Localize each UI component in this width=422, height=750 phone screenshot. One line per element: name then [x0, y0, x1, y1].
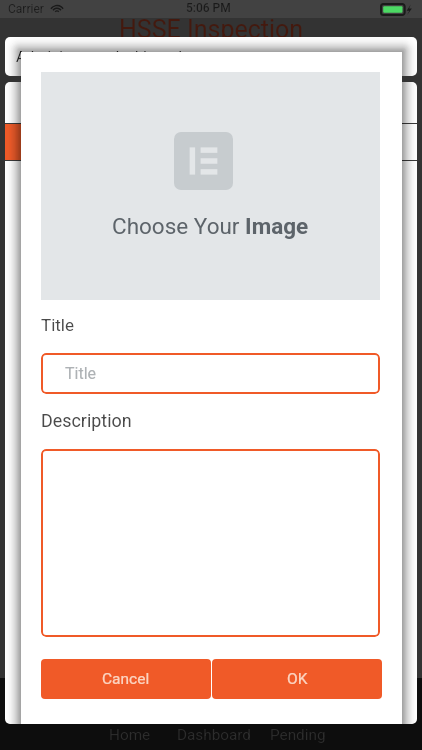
- staticText: 5:06 PM: [186, 1, 231, 15]
- staticText: HSSE Inspection: [119, 15, 304, 43]
- staticText: Title: [41, 315, 74, 335]
- button[interactable]: Dashboard: [172, 678, 256, 750]
- staticText: Dashboard: [177, 726, 251, 744]
- staticText: Choose Your Image: [112, 213, 309, 239]
- staticText: Home: [109, 726, 151, 744]
- staticText: Administrator dashboard: [16, 48, 182, 66]
- staticText: Carrier: [8, 2, 44, 16]
- button[interactable]: Title: [41, 353, 380, 394]
- staticText: Pending: [270, 726, 326, 744]
- staticText: Cancel: [102, 670, 150, 688]
- button[interactable]: Cancel: [41, 659, 211, 699]
- staticText: Description: [41, 410, 132, 431]
- button[interactable]: Choose Your Image: [41, 72, 380, 300]
- button[interactable]: [41, 449, 380, 637]
- button[interactable]: OK: [212, 659, 382, 699]
- staticText: Title: [65, 364, 97, 383]
- button[interactable]: Pending: [256, 678, 340, 750]
- button[interactable]: Home: [88, 678, 172, 750]
- staticText: OK: [287, 670, 308, 688]
